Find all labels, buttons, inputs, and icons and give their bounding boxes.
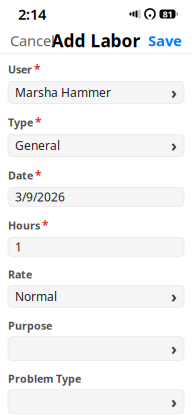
staticText: *	[35, 114, 42, 130]
staticText: General	[15, 137, 60, 153]
staticText: User	[8, 62, 32, 77]
staticText: *	[34, 61, 41, 77]
staticText: 81	[162, 8, 172, 20]
button[interactable]	[8, 337, 184, 361]
staticText: ›	[171, 286, 177, 307]
staticText: ›	[171, 391, 177, 412]
staticText: Purpose	[8, 318, 52, 333]
staticText: ›	[171, 135, 177, 156]
staticText: Type	[8, 115, 33, 129]
staticText: Cancel	[10, 31, 55, 50]
staticText: Date	[8, 168, 33, 182]
staticText: ›	[171, 338, 177, 359]
staticText: Problem Type	[8, 372, 81, 386]
staticText: *	[42, 217, 49, 233]
staticText: *	[35, 167, 42, 183]
staticText: Rate	[8, 267, 32, 281]
staticText: Hours	[8, 218, 40, 232]
button[interactable]: Save	[140, 25, 190, 56]
staticText: Normal	[15, 288, 57, 304]
button[interactable]	[8, 390, 184, 414]
staticText: Save	[148, 31, 182, 50]
button[interactable]: Normal	[8, 285, 184, 307]
button[interactable]: Marsha Hammer	[8, 81, 184, 103]
staticText: Add Labor	[51, 29, 140, 52]
staticText: 1	[15, 239, 22, 255]
staticText: ›	[171, 82, 177, 103]
button[interactable]: Cancel	[2, 25, 63, 56]
staticText: 3/9/2026	[15, 189, 65, 205]
staticText: Marsha Hammer	[15, 84, 111, 100]
button[interactable]: 3/9/2026	[8, 187, 184, 206]
button[interactable]: 1	[8, 237, 184, 256]
staticText: 2:14	[18, 4, 46, 24]
button[interactable]: General	[8, 134, 184, 156]
